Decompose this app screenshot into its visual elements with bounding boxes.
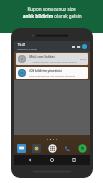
staticText: Kuponunuzun sonucunu bildirmemizi isters… [29,60,80,63]
staticText: 15:41 [17,43,26,47]
button[interactable]: Apps [48,144,57,153]
staticText: iOS bildirim yöneticisi [29,69,62,73]
button[interactable]: Recents [68,155,80,165]
staticText: anlık bildirim [22,13,54,19]
staticText: Pazartesi, 4 Şubat [17,47,37,50]
button[interactable]: Phone [63,144,72,153]
button[interactable]: Maps [78,144,87,153]
button[interactable]: Misli.com Sohbet [16,53,88,65]
staticText: şimdi [80,58,86,61]
button[interactable]: Messages [17,144,26,153]
button[interactable]: Home [46,155,58,165]
staticText: Tüm uygulamalar için bildirim yönetimi [29,74,75,77]
button[interactable]: iOS bildirim yöneticisi [16,67,88,79]
button[interactable]: Back [24,155,36,165]
staticText: Misli.com Sohbet [29,55,55,59]
staticText: Kupon sonucunuz size [27,6,76,12]
button[interactable]: Photos [32,144,41,153]
staticText: olarak gelsin [54,13,82,19]
